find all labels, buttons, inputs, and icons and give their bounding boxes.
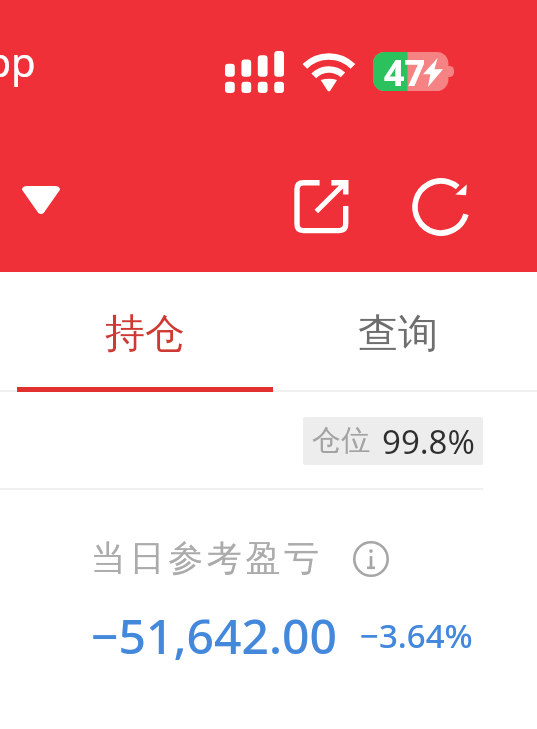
- button[interactable]: 查询: [273, 272, 529, 392]
- staticText: app: [0, 34, 36, 88]
- staticText: 持仓: [105, 308, 185, 358]
- staticText: 99.8%: [382, 419, 475, 464]
- staticText: 当日参考盈亏: [91, 536, 323, 580]
- staticText: 查询: [358, 308, 438, 358]
- staticText: −51,642.00: [91, 603, 337, 668]
- staticText: 仓位: [312, 422, 370, 459]
- button[interactable]: Information: [349, 537, 393, 581]
- button[interactable]: Expand account: [7, 166, 75, 234]
- button[interactable]: 持仓: [17, 272, 273, 392]
- button[interactable]: Open in new window: [287, 173, 355, 241]
- staticText: −3.64%: [360, 613, 473, 658]
- button[interactable]: Refresh: [407, 173, 475, 241]
- staticText: 47: [384, 48, 426, 87]
- button[interactable]: 仓位: [303, 417, 483, 465]
